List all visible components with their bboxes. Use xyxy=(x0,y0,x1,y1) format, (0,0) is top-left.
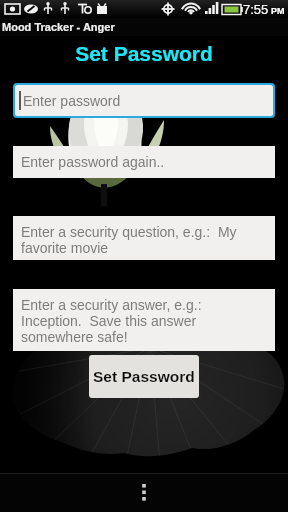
staticText: Set Password xyxy=(0,42,288,65)
staticText: Enter password xyxy=(23,93,121,109)
button[interactable]: Enter password xyxy=(15,85,273,116)
button[interactable]: Set Password xyxy=(89,355,199,398)
staticText: PM xyxy=(271,6,285,16)
button[interactable]: More options xyxy=(131,481,157,507)
staticText: Enter a security question, e.g.: My favo… xyxy=(21,224,237,256)
button[interactable]: Enter a security answer, e.g.: Inception… xyxy=(13,289,275,351)
button[interactable]: Enter a security question, e.g.: My favo… xyxy=(13,216,275,260)
button[interactable]: Enter password again.. xyxy=(13,146,275,178)
staticText: Set Password xyxy=(93,368,195,385)
staticText: Enter a security answer, e.g.: Inception… xyxy=(21,297,202,345)
staticText: 7:55 xyxy=(243,2,269,17)
staticText: Enter password again.. xyxy=(21,154,165,170)
staticText: Mood Tracker - Anger xyxy=(2,21,115,33)
